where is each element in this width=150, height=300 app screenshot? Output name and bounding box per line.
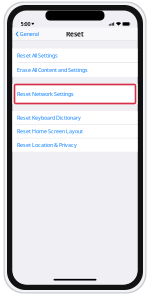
button[interactable]: Reset Network Settings <box>12 84 137 104</box>
button[interactable]: Erase All Content and Settings <box>12 63 137 77</box>
staticText: Reset Home Screen Layout <box>17 128 83 135</box>
staticText: Reset Keyboard Dictionary <box>17 114 81 121</box>
button[interactable]: Reset Keyboard Dictionary <box>12 111 137 124</box>
button[interactable]: Reset Location & Privacy <box>12 138 137 152</box>
staticText: Reset All Settings <box>17 52 58 59</box>
staticText: General <box>20 30 39 38</box>
staticText: Reset <box>66 30 84 38</box>
button[interactable]: Reset Home Screen Layout <box>12 125 137 138</box>
button[interactable]: General <box>12 27 39 40</box>
staticText: Reset Network Settings <box>17 90 74 97</box>
staticText: 5:00 <box>20 20 30 27</box>
staticText: Reset Location & Privacy <box>17 141 77 149</box>
button[interactable]: Reset All Settings <box>12 48 137 62</box>
staticText: Erase All Content and Settings <box>17 66 88 73</box>
